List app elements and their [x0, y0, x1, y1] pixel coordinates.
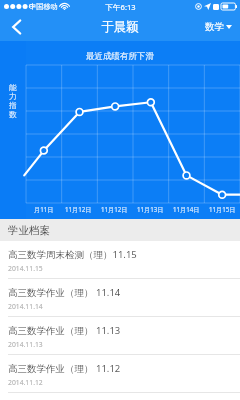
staticText: 能 — [9, 83, 17, 92]
staticText: 于晨颖 — [101, 19, 139, 35]
button[interactable]: 高三数学作业（理） 11.13 — [0, 317, 240, 354]
staticText: 11月12日 — [101, 205, 128, 213]
staticText: 2014.11.14 — [8, 302, 43, 311]
button[interactable]: 高三数学作业（理） 11.12 — [0, 355, 240, 392]
staticText: 高三数学周末检测（理）11.15 — [8, 248, 137, 261]
button[interactable]: 高三数学周末检测（理）11.15 — [0, 241, 240, 278]
staticText: 数学 — [205, 21, 224, 33]
staticText: 下午6:13 — [105, 2, 136, 12]
staticText: 11月15日 — [209, 205, 236, 213]
staticText: 数 — [9, 110, 17, 119]
button[interactable]: Back — [0, 13, 34, 41]
staticText: 力 — [9, 92, 17, 101]
staticText: 高三数学作业（理） 11.14 — [8, 286, 121, 299]
staticText: 高三数学作业（理） 11.12 — [8, 362, 121, 375]
button[interactable]: 高三数学作业（理） 11.14 — [0, 279, 240, 316]
staticText: 最近成绩有所下滑 — [86, 51, 154, 62]
staticText: 11月13日 — [137, 205, 164, 213]
staticText: 中国移动 — [29, 2, 58, 11]
staticText: 学业档案 — [8, 224, 50, 237]
staticText: 指 — [9, 101, 17, 110]
staticText: 2014.11.13 — [8, 340, 43, 349]
button[interactable]: 数学 — [197, 13, 240, 41]
staticText: 11月14日 — [173, 205, 200, 213]
staticText: 月11日 — [34, 205, 54, 213]
staticText: 高三数学作业（理） 11.13 — [8, 324, 121, 337]
staticText: 2014.11.15 — [8, 264, 43, 273]
staticText: 2014.11.12 — [8, 378, 43, 387]
staticText: 11月12日 — [65, 205, 92, 213]
